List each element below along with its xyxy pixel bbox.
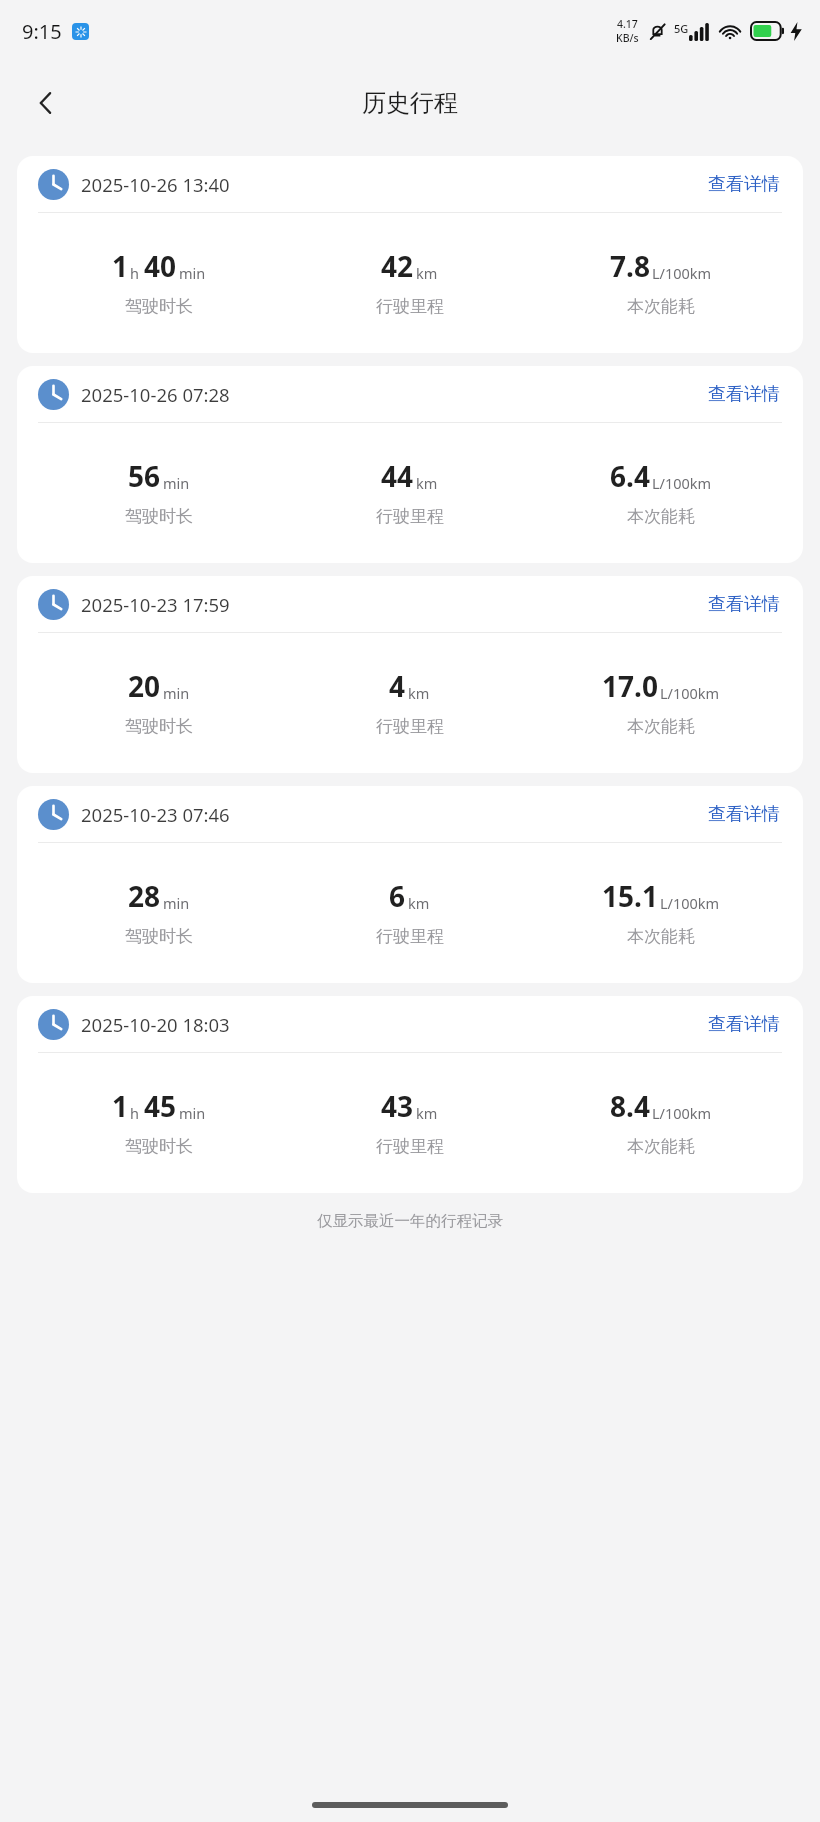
button[interactable]: 查看详情 bbox=[706, 1007, 782, 1042]
staticText: 9:15 bbox=[22, 18, 62, 45]
staticText: 44 bbox=[381, 457, 414, 495]
staticText: h bbox=[130, 1103, 139, 1123]
button[interactable]: 2025-10-26 13:40 bbox=[17, 156, 803, 353]
staticText: L/100km bbox=[652, 473, 712, 493]
staticText: 4.17 bbox=[617, 17, 638, 31]
staticText: km bbox=[416, 1103, 438, 1123]
staticText: 40 bbox=[144, 247, 177, 285]
staticText: 本次能耗 bbox=[627, 716, 695, 737]
button[interactable]: 2025-10-26 07:28 bbox=[17, 366, 803, 563]
staticText: 2025-10-23 17:59 bbox=[81, 592, 230, 617]
staticText: 行驶里程 bbox=[376, 506, 444, 527]
staticText: L/100km bbox=[652, 1103, 712, 1123]
staticText: 驾驶时长 bbox=[125, 716, 193, 737]
staticText: 4 bbox=[389, 667, 406, 705]
button[interactable]: 2025-10-20 18:03 bbox=[17, 996, 803, 1193]
staticText: L/100km bbox=[660, 683, 720, 703]
staticText: KB/s bbox=[616, 31, 639, 45]
button[interactable]: 查看详情 bbox=[706, 167, 782, 202]
staticText: 56 bbox=[128, 457, 161, 495]
staticText: km bbox=[416, 263, 438, 283]
staticText: min bbox=[163, 683, 190, 703]
staticText: 20 bbox=[128, 667, 161, 705]
staticText: 查看详情 bbox=[708, 803, 780, 826]
staticText: 2025-10-23 07:46 bbox=[81, 802, 230, 827]
staticText: 仅显示最近一年的行程记录 bbox=[0, 1211, 820, 1231]
staticText: h bbox=[130, 263, 139, 283]
staticText: km bbox=[408, 683, 430, 703]
button[interactable]: 查看详情 bbox=[706, 377, 782, 412]
staticText: 行驶里程 bbox=[376, 1136, 444, 1157]
button[interactable]: 2025-10-23 17:59 bbox=[17, 576, 803, 773]
staticText: 驾驶时长 bbox=[125, 296, 193, 317]
staticText: km bbox=[416, 473, 438, 493]
staticText: 历史行程 bbox=[362, 88, 458, 118]
staticText: 本次能耗 bbox=[627, 926, 695, 947]
button[interactable]: 查看详情 bbox=[706, 797, 782, 832]
staticText: 本次能耗 bbox=[627, 1136, 695, 1157]
button[interactable]: Back bbox=[22, 79, 70, 127]
staticText: 本次能耗 bbox=[627, 296, 695, 317]
staticText: min bbox=[163, 473, 190, 493]
staticText: L/100km bbox=[660, 893, 720, 913]
staticText: 1 bbox=[112, 1087, 129, 1125]
staticText: min bbox=[179, 263, 206, 283]
staticText: 2025-10-26 13:40 bbox=[81, 172, 230, 197]
staticText: 42 bbox=[381, 247, 414, 285]
staticText: 查看详情 bbox=[708, 173, 780, 196]
staticText: 本次能耗 bbox=[627, 506, 695, 527]
staticText: 15.1 bbox=[602, 877, 658, 915]
staticText: L/100km bbox=[652, 263, 712, 283]
staticText: 查看详情 bbox=[708, 1013, 780, 1036]
staticText: 行驶里程 bbox=[376, 716, 444, 737]
staticText: 7.8 bbox=[610, 247, 650, 285]
staticText: 43 bbox=[381, 1087, 414, 1125]
staticText: 28 bbox=[128, 877, 161, 915]
staticText: 行驶里程 bbox=[376, 296, 444, 317]
staticText: 6 bbox=[389, 877, 406, 915]
staticText: 5G bbox=[674, 21, 689, 36]
staticText: min bbox=[163, 893, 190, 913]
button[interactable]: 查看详情 bbox=[706, 587, 782, 622]
staticText: 2025-10-26 07:28 bbox=[81, 382, 230, 407]
staticText: min bbox=[179, 1103, 206, 1123]
staticText: 1 bbox=[112, 247, 129, 285]
staticText: 驾驶时长 bbox=[125, 1136, 193, 1157]
staticText: 驾驶时长 bbox=[125, 926, 193, 947]
staticText: 17.0 bbox=[602, 667, 658, 705]
staticText: 6.4 bbox=[610, 457, 650, 495]
staticText: 45 bbox=[144, 1087, 177, 1125]
staticText: 驾驶时长 bbox=[125, 506, 193, 527]
button[interactable]: 2025-10-23 07:46 bbox=[17, 786, 803, 983]
staticText: 查看详情 bbox=[708, 593, 780, 616]
staticText: km bbox=[408, 893, 430, 913]
staticText: 查看详情 bbox=[708, 383, 780, 406]
staticText: 行驶里程 bbox=[376, 926, 444, 947]
staticText: 2025-10-20 18:03 bbox=[81, 1012, 230, 1037]
staticText: 8.4 bbox=[610, 1087, 650, 1125]
